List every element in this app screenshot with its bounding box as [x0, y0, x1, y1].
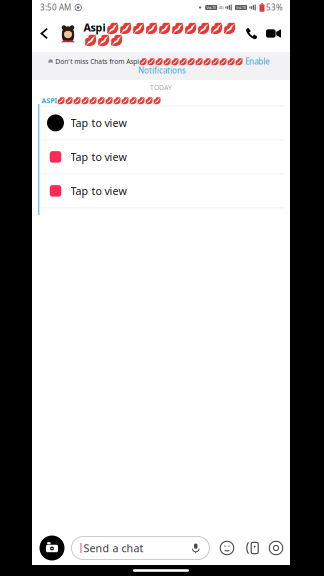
- button[interactable]: Stickers: [242, 534, 262, 561]
- button[interactable]: Video call: [263, 15, 283, 52]
- button[interactable]: Back: [35, 15, 53, 52]
- staticText: Tap to view: [70, 150, 126, 164]
- staticText: Tap to view: [70, 116, 126, 130]
- button[interactable]: Tap to view: [32, 173, 290, 207]
- staticText: 53%: [266, 2, 283, 13]
- staticText: 3:50 AM: [40, 2, 71, 13]
- staticText: Tap to view: [70, 184, 126, 198]
- staticText: ASPI💋💋💋💋💋💋💋💋💋💋💋💋💋: [41, 96, 161, 105]
- button[interactable]: Voice call: [241, 15, 261, 52]
- staticText: Send a chat: [83, 541, 143, 555]
- staticText: Notifications: [138, 65, 186, 76]
- button[interactable]: Tap to view: [32, 139, 290, 173]
- staticText: Aspi💋💋💋💋💋💋💋💋💋💋💋💋💋: [83, 20, 235, 47]
- staticText: Don't miss Chats from Aspi💋💋💋💋💋💋💋💋💋💋💋💋💋: [55, 57, 243, 66]
- button[interactable]: Emoji: [217, 534, 237, 561]
- button[interactable]: Don't miss Chats from Aspi💋💋💋💋💋💋💋💋💋💋💋💋💋: [32, 52, 290, 80]
- button[interactable]: Send a chat: [71, 536, 209, 559]
- staticText: VoLTE: [206, 5, 216, 10]
- button[interactable]: Tap to view: [32, 105, 290, 139]
- button[interactable]: Snap Map: [266, 534, 286, 561]
- staticText: 4G: [219, 5, 224, 10]
- staticText: VoLTE: [236, 5, 246, 10]
- staticText: TODAY: [150, 83, 172, 92]
- button[interactable]: Open camera: [37, 533, 66, 562]
- button[interactable]: Aspi💋💋💋💋💋💋💋💋💋💋💋💋💋: [83, 15, 241, 52]
- staticText: Enable: [245, 56, 270, 67]
- button[interactable]: Open profile: [57, 15, 78, 52]
